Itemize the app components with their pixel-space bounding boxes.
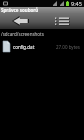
staticText: 9:45 <box>71 0 82 7</box>
staticText: Správce souborů <box>1 7 39 13</box>
staticText: 27.00 bytes <box>56 44 80 50</box>
button[interactable]: config.dat <box>0 38 84 55</box>
button[interactable]: List view <box>42 13 84 29</box>
staticText: config.dat <box>13 44 35 50</box>
staticText: /sdcard/screenshots <box>1 31 44 37</box>
button[interactable]: Back <box>0 13 42 29</box>
